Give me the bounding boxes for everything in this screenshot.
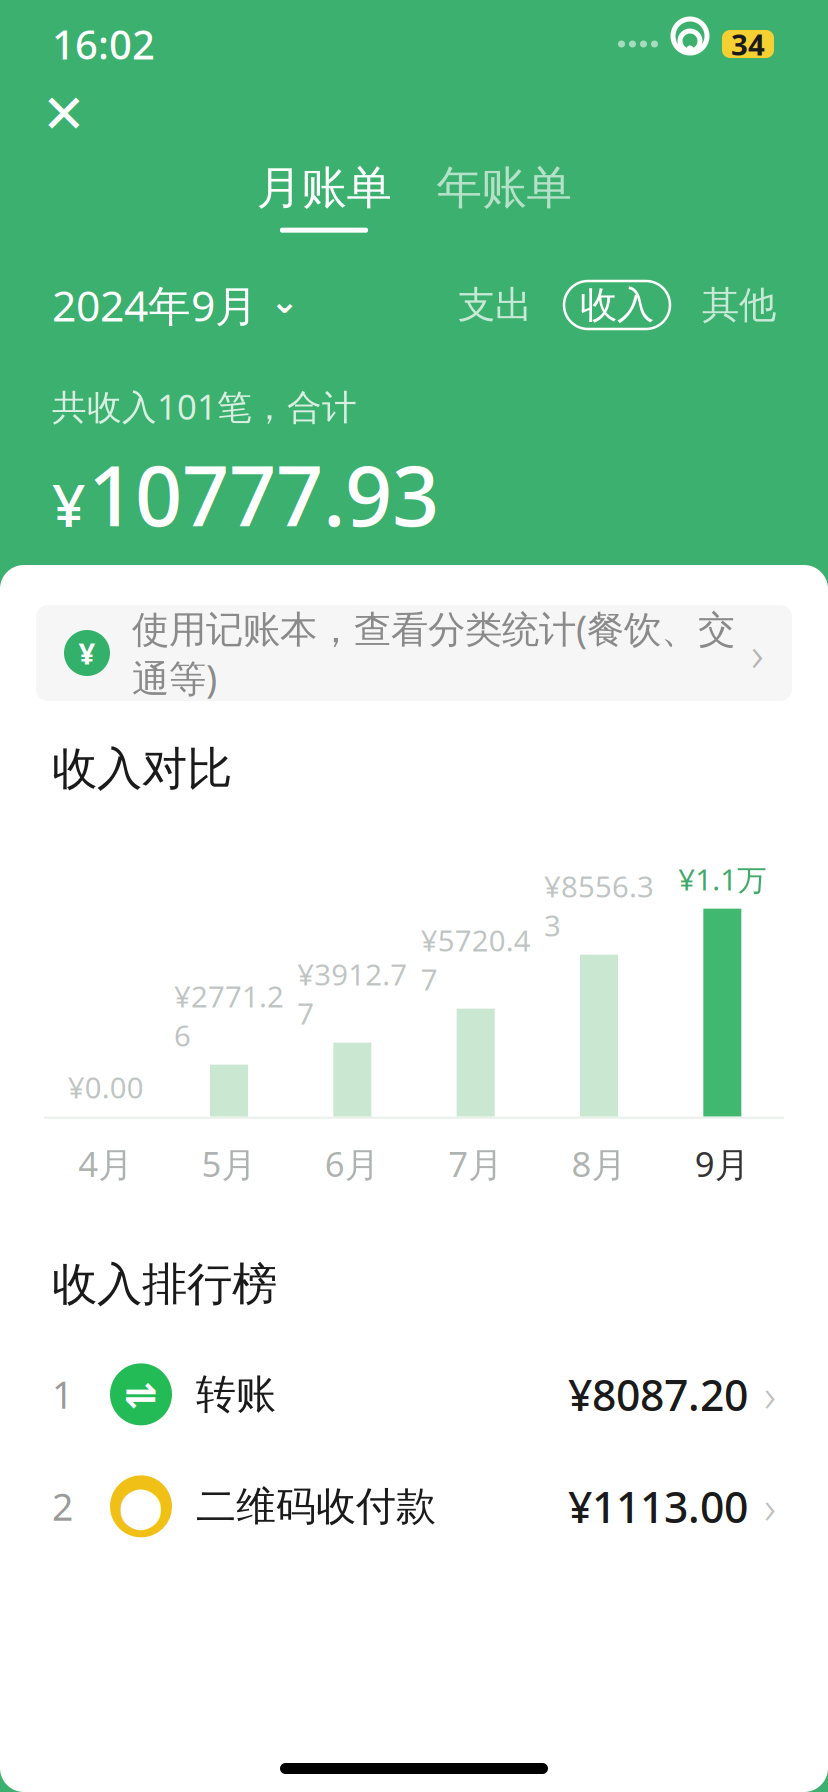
staticText: 4月 — [78, 1141, 133, 1187]
button[interactable]: 年账单 — [414, 160, 594, 233]
staticText: 7月 — [448, 1141, 503, 1187]
staticText: 16:02 — [52, 17, 155, 70]
staticText: ⌄ — [270, 281, 299, 321]
staticText: 9月 — [695, 1141, 750, 1187]
staticText: 收入排行榜 — [52, 1257, 277, 1312]
staticText: ¥5720.47 — [421, 921, 531, 999]
staticText: ¥ — [78, 633, 95, 672]
staticText: 6月 — [325, 1141, 380, 1187]
button[interactable]: 月账单 — [234, 160, 414, 233]
staticText: 2024年9月 — [52, 277, 258, 333]
staticText: ¥3912.77 — [297, 955, 407, 1033]
staticText: ⬤ — [118, 1484, 163, 1529]
staticText: 支出 — [458, 282, 532, 328]
staticText: ¥1.1万 — [678, 860, 766, 899]
staticText: ¥1113.00 — [568, 1478, 748, 1535]
staticText: 转账 — [196, 1370, 276, 1419]
button[interactable]: 2 — [0, 1450, 828, 1562]
staticText: › — [764, 1364, 776, 1424]
staticText: ⇌ — [124, 1372, 158, 1417]
staticText: 8月 — [571, 1141, 626, 1187]
staticText: 5月 — [201, 1141, 256, 1187]
button[interactable]: 1 — [0, 1338, 828, 1450]
staticText: 二维码收付款 — [196, 1482, 436, 1531]
staticText: ¥ — [52, 465, 86, 543]
staticText: › — [764, 1476, 776, 1536]
button[interactable]: 2024年9月 — [52, 277, 299, 333]
staticText: 34 — [731, 24, 765, 63]
staticText: 月账单 — [256, 160, 391, 216]
staticText: 其他 — [702, 282, 776, 328]
button[interactable]: 其他 — [702, 282, 776, 328]
button[interactable]: Close — [36, 86, 92, 142]
staticText: ¥2771.26 — [174, 977, 284, 1055]
staticText: 10777.93 — [88, 439, 439, 549]
staticText: 收入对比 — [52, 741, 232, 797]
staticText: 使用记账本，查看分类统计(餐饮、交通等) — [132, 603, 735, 703]
staticText: ¥8556.33 — [544, 867, 654, 945]
staticText: 收入 — [580, 282, 654, 328]
staticText: 1 — [52, 1370, 73, 1419]
button[interactable]: ¥ — [36, 605, 792, 701]
staticText: 年账单 — [436, 160, 571, 216]
button[interactable]: 收入 — [564, 281, 670, 329]
staticText: › — [751, 621, 764, 685]
staticText: 共收入101笔，合计 — [52, 383, 357, 429]
button[interactable]: 支出 — [448, 282, 542, 328]
staticText: ¥0.00 — [68, 1068, 144, 1107]
staticText: ¥8087.20 — [568, 1366, 748, 1423]
staticText: 2 — [52, 1482, 73, 1531]
staticText: ✕ — [41, 84, 86, 144]
